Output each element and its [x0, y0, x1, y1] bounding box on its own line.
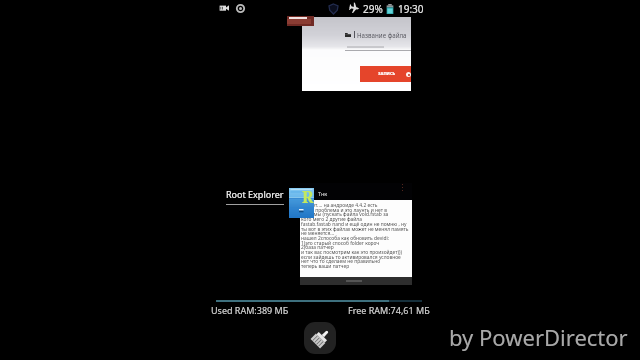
staticText: Used RAM:389 МБ — [211, 304, 289, 316]
staticText: и так вас посмотрим как это произойдет))… — [301, 249, 402, 256]
staticText: 19:30 — [398, 2, 424, 16]
staticText: Тнк — [318, 190, 328, 197]
staticText: Free RAM:74,61 МБ — [348, 304, 430, 316]
staticText: теперь ваши патчер — [301, 263, 350, 270]
staticText: такая проблема и это лаунть и нет в — [301, 207, 387, 214]
staticText: Root Explorer — [226, 188, 284, 200]
staticText: R — [302, 186, 314, 208]
staticText: нашел 2способа как обновить devidi: — [301, 235, 390, 242]
staticText: ЗАПИСЬ — [378, 71, 396, 77]
staticText: системы (пускать файла vold.fstab за — [301, 211, 389, 218]
staticText: кого мего 2 другие файла — [301, 216, 362, 223]
button[interactable]: ЗАПИСЬ — [360, 66, 411, 82]
staticText: превет.... на андроиде 4.4.2 есть — [301, 202, 378, 209]
staticText: 1)это старый способ folder короч — [301, 240, 380, 247]
staticText: fastab.fastab nand и ещё один не помню ,… — [301, 221, 407, 228]
staticText: by PowerDirector — [449, 322, 628, 352]
staticText: нет что то сделаем не правильно — [301, 258, 381, 265]
staticText: 2)база патчер — [301, 244, 334, 251]
staticText: Название файла — [357, 31, 407, 39]
staticText: ты вот в этих файлах может не менял памя… — [301, 226, 409, 233]
staticText: 29% — [363, 2, 383, 16]
staticText: если зайдешь то активировался условное е… — [301, 254, 413, 261]
button[interactable]: Clean — [304, 322, 336, 354]
staticText: не меняется... — [301, 230, 335, 237]
